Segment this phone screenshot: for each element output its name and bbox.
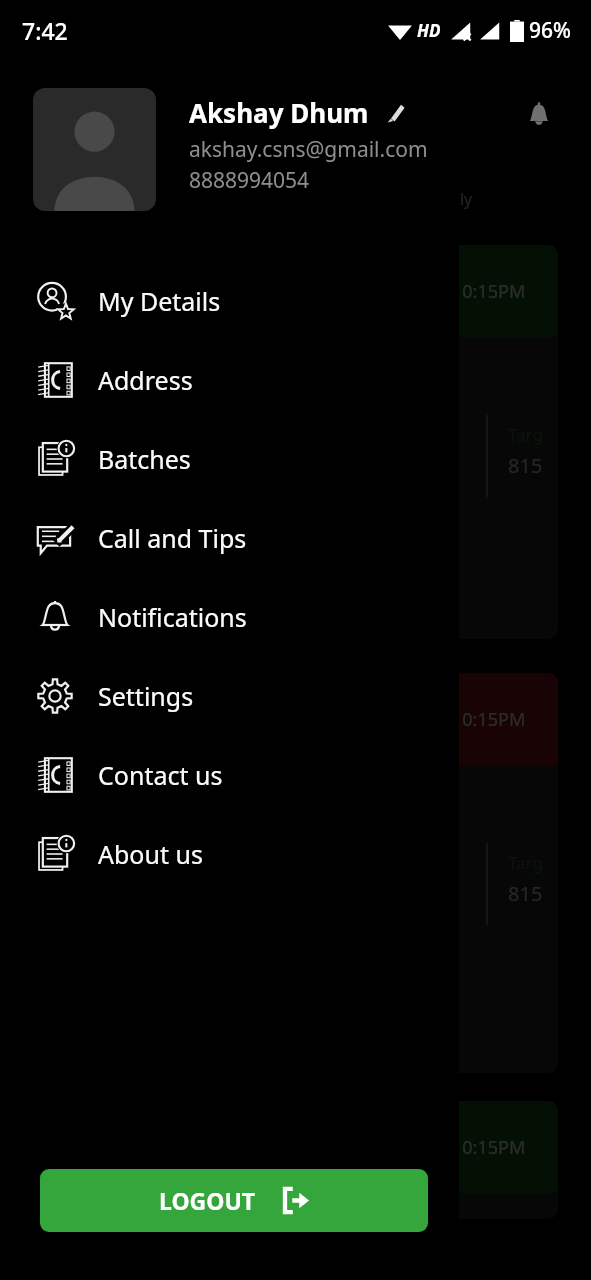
- button[interactable]: Edit profile: [382, 99, 410, 127]
- button[interactable]: Settings: [0, 656, 459, 735]
- staticText: Settings: [98, 679, 194, 713]
- staticText: 7:42: [22, 15, 68, 46]
- button[interactable]: Batches: [0, 419, 459, 498]
- button[interactable]: Notifications: [512, 88, 566, 142]
- button[interactable]: Call and Tips: [0, 498, 459, 577]
- staticText: akshay.csns@gmail.com: [189, 135, 428, 164]
- button[interactable]: 10:15PM: [300, 245, 558, 639]
- staticText: Targ: [508, 851, 543, 874]
- button[interactable]: My Details: [0, 261, 459, 340]
- button[interactable]: Notifications: [0, 577, 459, 656]
- staticText: 10:15PM: [452, 1135, 526, 1160]
- staticText: LOGOUT: [159, 1185, 256, 1216]
- staticText: Contact us: [98, 758, 223, 792]
- staticText: 815: [508, 880, 543, 907]
- staticText: for demo purpose only: [300, 188, 473, 210]
- staticText: My Details: [98, 284, 221, 318]
- button[interactable]: 10:15PM: [300, 1101, 558, 1219]
- button[interactable]: Address: [0, 340, 459, 419]
- staticText: 96%: [529, 16, 571, 45]
- staticText: 8888994054: [189, 166, 310, 195]
- staticText: 815: [508, 452, 543, 479]
- staticText: Akshay Dhum: [189, 95, 369, 130]
- button[interactable]: Profile photo: [33, 88, 156, 211]
- button[interactable]: About us: [0, 814, 459, 893]
- button[interactable]: 10:15PM: [300, 673, 558, 1073]
- staticText: Address: [98, 363, 193, 397]
- staticText: Call and Tips: [98, 521, 247, 555]
- staticText: Batches: [98, 442, 191, 476]
- staticText: 10:15PM: [452, 707, 526, 732]
- staticText: About us: [98, 837, 203, 871]
- staticText: Targ: [508, 423, 543, 446]
- staticText: HD: [417, 19, 441, 42]
- staticText: Notifications: [98, 600, 247, 634]
- staticText: 10:15PM: [452, 279, 526, 304]
- button[interactable]: Contact us: [0, 735, 459, 814]
- button[interactable]: LOGOUT: [40, 1169, 428, 1232]
